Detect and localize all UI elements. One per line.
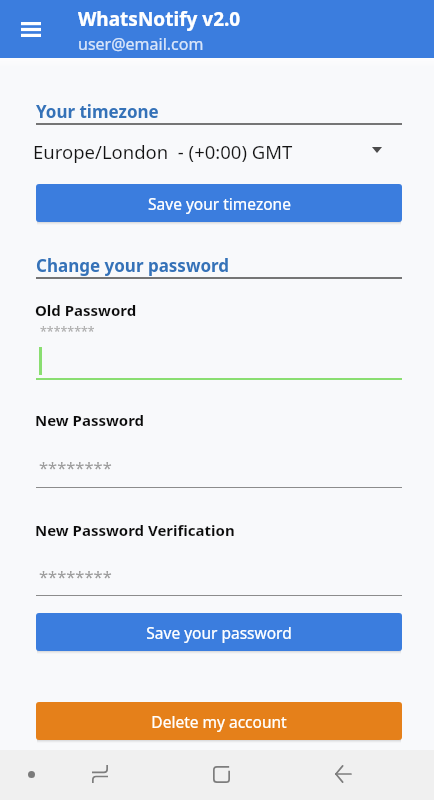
staticText: user@email.com — [78, 33, 204, 55]
staticText: Europe/London - (+0:00) GMT — [33, 139, 293, 164]
staticText: Save your timezone — [148, 193, 291, 214]
staticText: Change your password — [36, 254, 230, 277]
button[interactable]: Switch apps — [80, 754, 120, 794]
button[interactable]: Open navigation menu — [11, 11, 51, 48]
staticText: New Password — [35, 410, 145, 430]
button[interactable]: Home — [201, 754, 241, 794]
staticText: Your timezone — [36, 100, 159, 123]
staticText: WhatsNotify v2.0 — [78, 6, 241, 32]
staticText: ******** — [40, 323, 95, 340]
button[interactable]: Back — [323, 754, 363, 794]
staticText: Old Password — [35, 300, 137, 320]
staticText: ******** — [39, 456, 112, 478]
button[interactable]: Save your password — [36, 613, 402, 651]
staticText: ******** — [39, 565, 112, 587]
staticText: Delete my account — [151, 711, 287, 732]
button[interactable]: Delete my account — [36, 702, 402, 740]
button[interactable]: Europe/London - (+0:00) GMT — [0, 135, 434, 165]
staticText: New Password Verification — [35, 520, 235, 540]
button[interactable]: Assistant — [11, 754, 51, 794]
button[interactable]: Save your timezone — [36, 184, 402, 222]
staticText: Save your password — [146, 622, 292, 643]
